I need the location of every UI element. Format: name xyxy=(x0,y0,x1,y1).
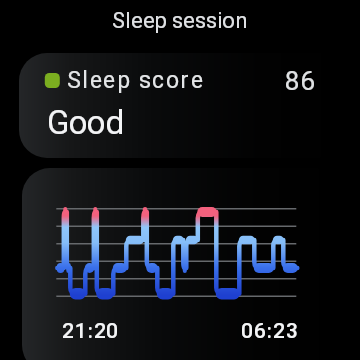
button[interactable] xyxy=(22,168,339,360)
button[interactable] xyxy=(19,53,342,158)
